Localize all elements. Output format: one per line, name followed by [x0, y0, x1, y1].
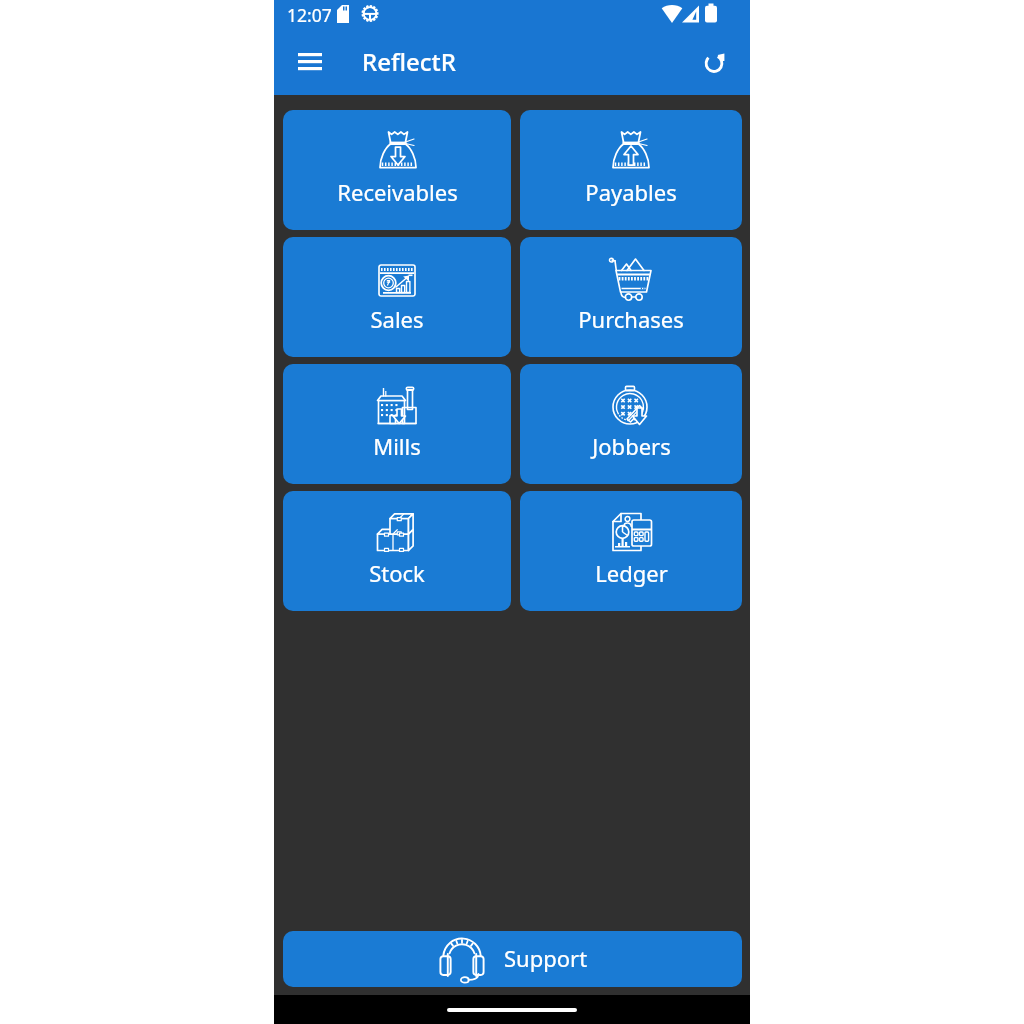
button[interactable]: Purchases: [520, 237, 742, 357]
button[interactable]: Refresh: [694, 41, 738, 85]
staticText: Payables: [585, 177, 677, 207]
button[interactable]: Mills: [283, 364, 511, 484]
staticText: ReflectR: [362, 45, 456, 78]
staticText: Ledger: [595, 558, 668, 588]
button[interactable]: Ledger: [520, 491, 742, 611]
staticText: 12:07: [287, 3, 332, 27]
staticText: Purchases: [578, 304, 684, 334]
button[interactable]: Receivables: [283, 110, 511, 230]
staticText: Receivables: [337, 177, 458, 207]
button[interactable]: Jobbers: [520, 364, 742, 484]
staticText: Sales: [370, 304, 424, 334]
staticText: Stock: [369, 558, 425, 588]
button[interactable]: Payables: [520, 110, 742, 230]
button[interactable]: Sales: [283, 237, 511, 357]
staticText: Support: [504, 943, 588, 973]
button[interactable]: Support: [283, 931, 742, 987]
staticText: Mills: [373, 431, 421, 461]
button[interactable]: Menu: [287, 41, 331, 85]
button[interactable]: Stock: [283, 491, 511, 611]
staticText: Jobbers: [592, 431, 671, 461]
